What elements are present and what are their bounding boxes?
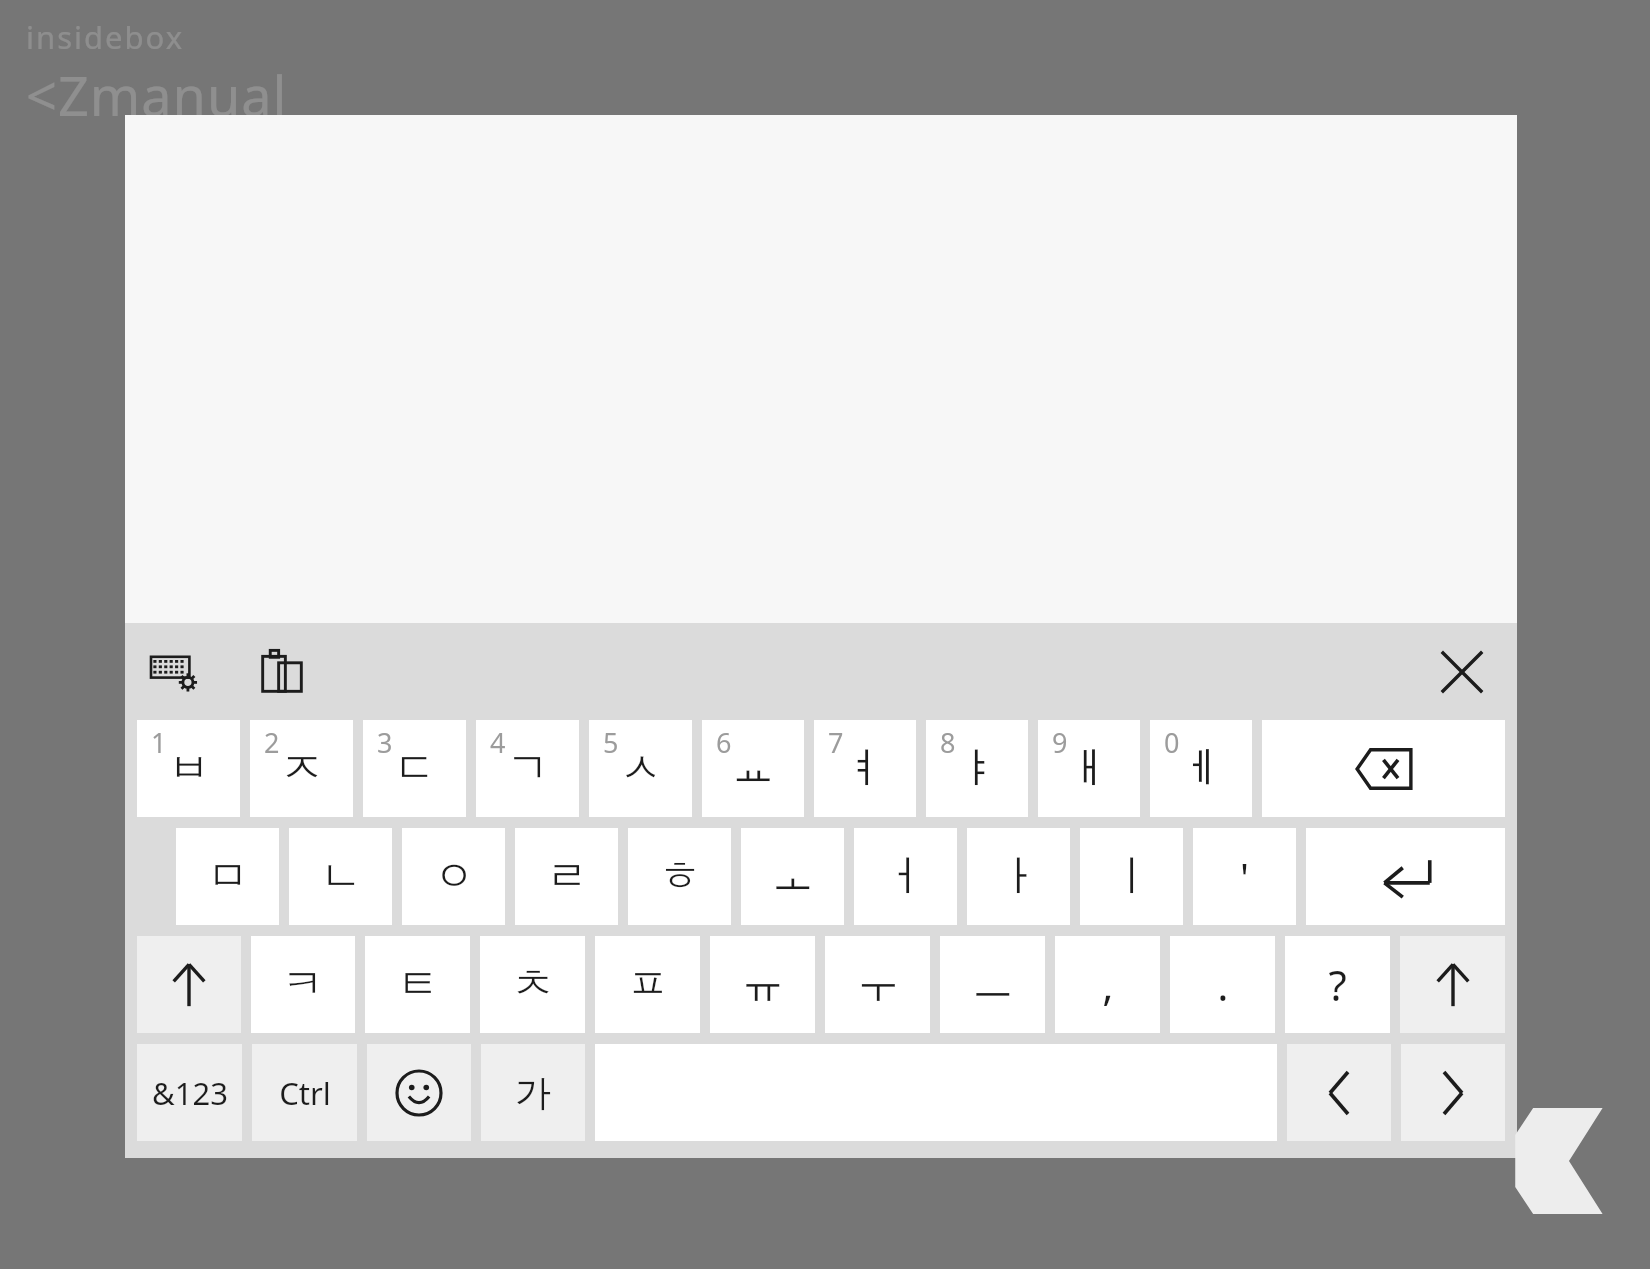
staticText: 9 xyxy=(1052,724,1068,761)
button[interactable]: 0 xyxy=(1150,720,1252,817)
button[interactable]: 5 xyxy=(589,720,692,817)
button[interactable]: Shift xyxy=(1400,936,1505,1033)
button[interactable]: ㅁ xyxy=(176,828,279,925)
button[interactable]: Keyboard settings xyxy=(141,639,207,705)
staticText: ㅑ xyxy=(956,742,998,795)
button[interactable]: Emoji xyxy=(367,1044,471,1141)
staticText: 가 xyxy=(515,1070,551,1115)
staticText: ㅠ xyxy=(742,958,784,1011)
button[interactable]: 가 xyxy=(481,1044,585,1141)
staticText: ㅔ xyxy=(1180,742,1222,795)
staticText: ㅍ xyxy=(627,958,669,1011)
button[interactable]: Expand panel xyxy=(1513,1102,1625,1220)
button[interactable]: ㅋ xyxy=(251,936,355,1033)
staticText: ㅇ xyxy=(433,850,475,903)
staticText: ㅈ xyxy=(281,742,323,795)
button[interactable]: Close keyboard xyxy=(1429,639,1495,705)
staticText: ㅗ xyxy=(772,850,814,903)
button[interactable]: 1 xyxy=(137,720,240,817)
button[interactable]: 9 xyxy=(1038,720,1140,817)
staticText: 7 xyxy=(828,724,844,761)
button[interactable]: ㅍ xyxy=(595,936,700,1033)
button[interactable]: 3 xyxy=(363,720,466,817)
button[interactable]: ㅎ xyxy=(628,828,731,925)
staticText: ㄴ xyxy=(320,850,362,903)
button[interactable]: ㅇ xyxy=(402,828,505,925)
staticText: ㄹ xyxy=(546,850,588,903)
staticText: ㅐ xyxy=(1068,742,1110,795)
staticText: Ctrl xyxy=(279,1072,331,1114)
staticText: ㄷ xyxy=(394,742,436,795)
button[interactable]: ㄴ xyxy=(289,828,392,925)
staticText: <Zmanual xyxy=(26,58,288,132)
staticText: ㅜ xyxy=(857,958,899,1011)
staticText: ㅓ xyxy=(885,850,927,903)
staticText: ㅊ xyxy=(512,958,554,1011)
button[interactable]: 7 xyxy=(814,720,916,817)
button[interactable]: ㅡ xyxy=(940,936,1045,1033)
staticText: ㅅ xyxy=(620,742,662,795)
button[interactable]: ㅊ xyxy=(480,936,585,1033)
button[interactable]: Backspace xyxy=(1262,720,1505,817)
button[interactable]: ㅗ xyxy=(741,828,844,925)
staticText: ㄱ xyxy=(507,742,549,795)
staticText: 8 xyxy=(940,724,956,761)
button[interactable]: Move right xyxy=(1401,1044,1505,1141)
button[interactable]: 4 xyxy=(476,720,579,817)
staticText: ㅁ xyxy=(207,850,249,903)
staticText: ㅕ xyxy=(844,742,886,795)
button[interactable]: ㅏ xyxy=(967,828,1070,925)
staticText: 0 xyxy=(1164,724,1180,761)
button[interactable]: . xyxy=(1170,936,1275,1033)
staticText: 6 xyxy=(716,724,732,761)
button[interactable]: 6 xyxy=(702,720,804,817)
staticText: ㅂ xyxy=(168,742,210,795)
staticText: ㅛ xyxy=(732,742,774,795)
button[interactable]: ' xyxy=(1193,828,1296,925)
staticText: ㅌ xyxy=(397,958,439,1011)
staticText: , xyxy=(1102,956,1114,1013)
button[interactable]: ? xyxy=(1285,936,1390,1033)
staticText: 4 xyxy=(490,724,506,761)
button[interactable]: , xyxy=(1055,936,1160,1033)
staticText: 5 xyxy=(603,724,619,761)
staticText: 2 xyxy=(264,724,280,761)
button[interactable]: ㅓ xyxy=(854,828,957,925)
staticText: ' xyxy=(1240,850,1249,904)
staticText: ? xyxy=(1328,956,1347,1013)
staticText: ㅏ xyxy=(998,850,1040,903)
button[interactable]: ㅠ xyxy=(710,936,815,1033)
button[interactable]: 2 xyxy=(250,720,353,817)
button[interactable]: Shift xyxy=(137,936,241,1033)
button[interactable]: Enter xyxy=(1306,828,1505,925)
button[interactable]: Move left xyxy=(1287,1044,1391,1141)
button[interactable]: Clipboard xyxy=(249,639,315,705)
button[interactable]: ㅣ xyxy=(1080,828,1183,925)
button[interactable]: Ctrl xyxy=(252,1044,357,1141)
button[interactable]: &123 xyxy=(137,1044,242,1141)
staticText: 1 xyxy=(151,724,167,761)
staticText: ㅋ xyxy=(282,958,324,1011)
staticText: ㅡ xyxy=(972,958,1014,1011)
staticText: . xyxy=(1217,956,1229,1013)
staticText: &123 xyxy=(152,1072,228,1114)
button[interactable]: ㅜ xyxy=(825,936,930,1033)
button[interactable]: ㄹ xyxy=(515,828,618,925)
staticText: ㅎ xyxy=(659,850,701,903)
staticText: ㅣ xyxy=(1111,850,1153,903)
button[interactable]: 8 xyxy=(926,720,1028,817)
staticText: insidebox xyxy=(26,16,185,58)
button[interactable]: ㅌ xyxy=(365,936,470,1033)
staticText: 3 xyxy=(377,724,393,761)
